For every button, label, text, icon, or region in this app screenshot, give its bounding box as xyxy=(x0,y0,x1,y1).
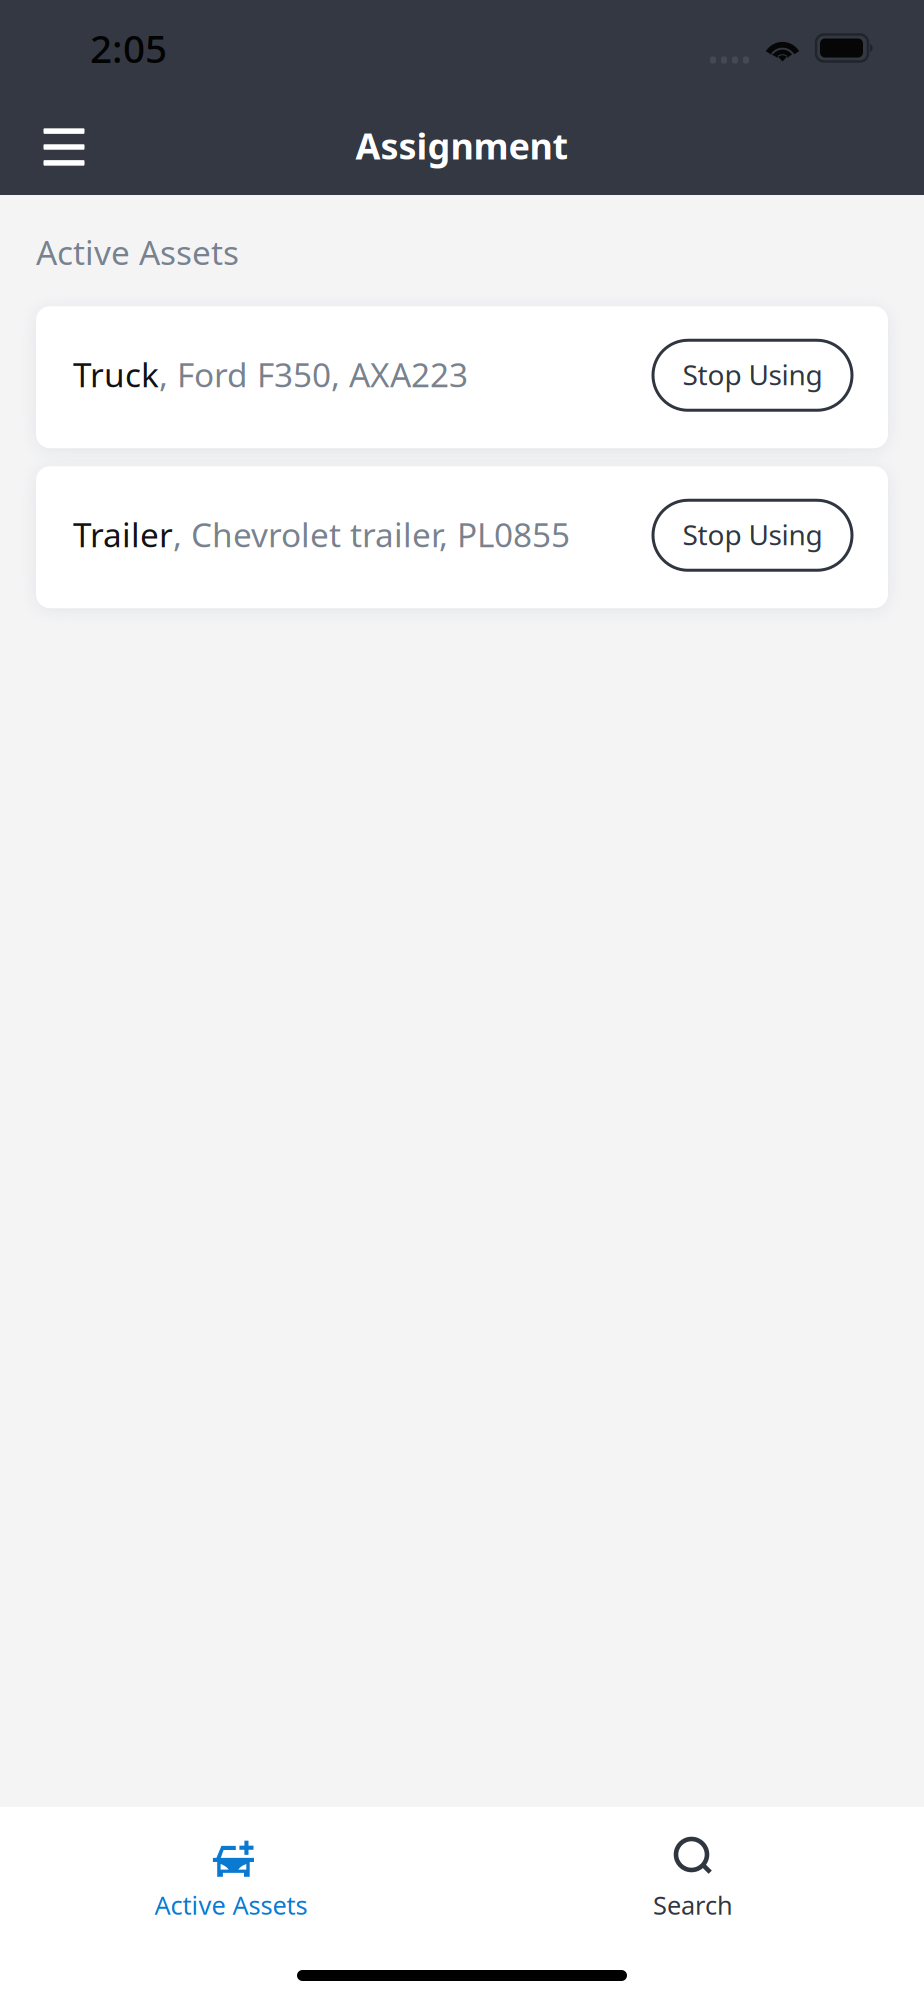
staticText: Active Assets xyxy=(154,1888,307,1922)
staticText: 2:05 xyxy=(90,22,167,74)
staticText: Active Assets xyxy=(36,230,239,274)
button[interactable]: Stop Using xyxy=(653,502,852,572)
staticText: Assignment xyxy=(355,122,568,169)
staticText: Truck xyxy=(73,352,159,396)
staticText: Trailer xyxy=(73,512,173,556)
button[interactable]: Active Assets xyxy=(0,1807,462,1938)
button[interactable]: Stop Using xyxy=(653,342,852,412)
button[interactable]: Menu xyxy=(34,113,94,177)
staticText: , Ford F350, AXA223 xyxy=(159,352,468,396)
staticText: Stop Using xyxy=(682,356,822,393)
button[interactable]: Search xyxy=(462,1807,924,1938)
staticText: , Chevrolet trailer, PL0855 xyxy=(173,512,570,556)
staticText: Search xyxy=(653,1888,733,1922)
staticText: Stop Using xyxy=(682,516,822,553)
